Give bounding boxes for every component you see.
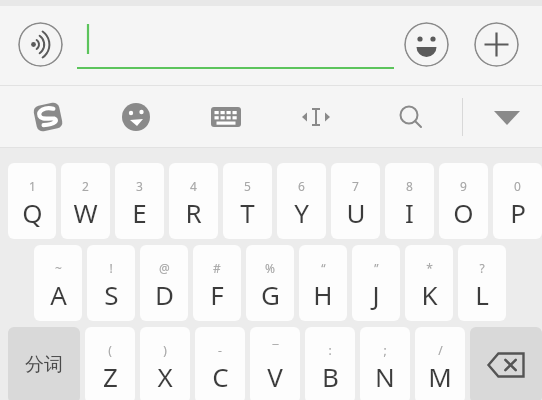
button[interactable]: ): [140, 327, 190, 400]
button[interactable]: @: [140, 245, 188, 321]
button[interactable]: 8: [385, 163, 434, 239]
button[interactable]: 9: [439, 163, 488, 239]
staticText: T: [240, 195, 255, 230]
staticText: @: [159, 260, 170, 276]
staticText: !: [109, 260, 113, 276]
staticText: D: [155, 277, 174, 312]
staticText: /: [438, 342, 443, 358]
staticText: X: [157, 359, 173, 394]
staticText: 5: [244, 178, 251, 194]
staticText: U: [346, 195, 366, 230]
button[interactable]: ”: [352, 245, 400, 321]
button[interactable]: 4: [169, 163, 218, 239]
staticText: 6: [298, 178, 305, 194]
button[interactable]: Sogou menu: [18, 96, 78, 138]
staticText: Q: [22, 195, 43, 230]
button[interactable]: /: [415, 327, 465, 400]
button[interactable]: 1: [8, 163, 56, 239]
staticText: %: [265, 260, 275, 276]
staticText: M: [428, 359, 452, 394]
staticText: B: [322, 359, 339, 394]
button[interactable]: Collapse keyboard: [482, 96, 532, 138]
staticText: 8: [406, 178, 413, 194]
staticText: ;: [383, 342, 387, 358]
staticText: 7: [352, 178, 359, 194]
staticText: L: [475, 277, 489, 312]
button[interactable]: %: [246, 245, 294, 321]
staticText: J: [372, 277, 380, 312]
staticText: ~: [55, 260, 62, 276]
staticText: ¯: [272, 342, 279, 358]
button[interactable]: -: [195, 327, 245, 400]
staticText: Y: [294, 195, 309, 230]
button[interactable]: 分词: [8, 327, 80, 400]
button[interactable]: [76, 18, 396, 72]
staticText: A: [50, 277, 67, 312]
staticText: C: [212, 359, 229, 394]
button[interactable]: 3: [115, 163, 164, 239]
staticText: 1: [29, 178, 36, 194]
button[interactable]: 0: [493, 163, 542, 239]
staticText: “: [321, 260, 326, 276]
staticText: 2: [82, 178, 89, 194]
button[interactable]: Keyboard layout: [200, 96, 252, 138]
button[interactable]: 5: [223, 163, 272, 239]
button[interactable]: #: [193, 245, 241, 321]
staticText: ): [163, 342, 167, 358]
button[interactable]: Add: [474, 22, 519, 67]
button[interactable]: 6: [277, 163, 326, 239]
staticText: 9: [460, 178, 467, 194]
staticText: ?: [479, 260, 485, 276]
button[interactable]: ¯: [250, 327, 300, 400]
button[interactable]: “: [299, 245, 347, 321]
staticText: *: [426, 260, 433, 276]
staticText: N: [375, 359, 395, 394]
staticText: ”: [374, 260, 379, 276]
button[interactable]: Voice input: [18, 22, 63, 67]
staticText: E: [132, 195, 147, 230]
staticText: Z: [103, 359, 118, 394]
staticText: 分词: [25, 353, 63, 377]
button[interactable]: Stickers: [110, 96, 162, 138]
staticText: O: [453, 195, 474, 230]
staticText: :: [328, 342, 332, 358]
button[interactable]: Backspace: [470, 327, 542, 400]
button[interactable]: !: [87, 245, 135, 321]
staticText: R: [185, 195, 202, 230]
staticText: W: [73, 195, 98, 230]
button[interactable]: 2: [61, 163, 110, 239]
staticText: V: [267, 359, 283, 394]
staticText: F: [210, 277, 224, 312]
button[interactable]: (: [85, 327, 135, 400]
button[interactable]: ;: [360, 327, 410, 400]
button[interactable]: *: [405, 245, 453, 321]
button[interactable]: Emoji: [404, 22, 449, 67]
staticText: 0: [514, 178, 521, 194]
staticText: H: [313, 277, 333, 312]
button[interactable]: 7: [331, 163, 380, 239]
staticText: (: [108, 342, 112, 358]
button[interactable]: ?: [458, 245, 506, 321]
staticText: I: [405, 195, 414, 230]
staticText: 3: [136, 178, 143, 194]
staticText: P: [510, 195, 526, 230]
button[interactable]: Move cursor: [290, 96, 342, 138]
button[interactable]: Search: [385, 96, 437, 138]
button[interactable]: :: [305, 327, 355, 400]
staticText: 4: [190, 178, 197, 194]
staticText: -: [218, 342, 222, 358]
staticText: G: [261, 277, 280, 312]
staticText: S: [104, 277, 119, 312]
button[interactable]: ~: [34, 245, 82, 321]
staticText: K: [421, 277, 438, 312]
staticText: #: [213, 260, 221, 276]
